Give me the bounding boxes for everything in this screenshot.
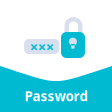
staticText: Password — [24, 87, 87, 105]
staticText: ××× — [30, 37, 54, 56]
